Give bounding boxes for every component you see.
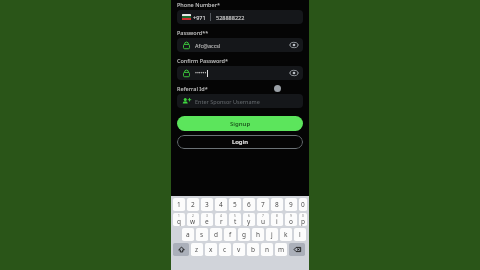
staticText: 8 bbox=[276, 214, 278, 218]
staticText: Password** bbox=[177, 29, 209, 36]
staticText: i bbox=[276, 217, 278, 226]
staticText: g bbox=[242, 230, 246, 239]
staticText: 7 bbox=[262, 214, 264, 218]
button[interactable]: s bbox=[196, 228, 208, 241]
staticText: 9 bbox=[289, 200, 293, 209]
staticText: z bbox=[195, 245, 199, 254]
staticText: 6 bbox=[247, 200, 251, 209]
button[interactable]: f bbox=[224, 228, 236, 241]
staticText: 7 bbox=[261, 200, 265, 209]
button[interactable]: z bbox=[191, 243, 203, 256]
button[interactable]: j bbox=[266, 228, 278, 241]
staticText: Login bbox=[232, 138, 248, 146]
button[interactable]: l bbox=[294, 228, 306, 241]
staticText: s bbox=[200, 230, 204, 239]
staticText: 0 bbox=[302, 214, 304, 218]
staticText: k bbox=[284, 230, 288, 239]
staticText: 5 bbox=[233, 200, 237, 209]
staticText: Referral Id* bbox=[177, 85, 208, 92]
staticText: 1 bbox=[178, 214, 180, 218]
button[interactable]: 0 bbox=[299, 198, 307, 211]
staticText: c bbox=[223, 245, 227, 254]
staticText: x bbox=[209, 245, 213, 254]
button[interactable]: +971 bbox=[177, 10, 303, 24]
button[interactable]: Enter Sponsor Username bbox=[177, 94, 303, 108]
staticText: e bbox=[205, 217, 209, 226]
staticText: l bbox=[299, 230, 301, 239]
staticText: w bbox=[190, 217, 196, 226]
button[interactable]: 2 bbox=[187, 198, 199, 211]
button[interactable]: 5 bbox=[229, 198, 241, 211]
staticText: h bbox=[256, 230, 261, 239]
staticText: 2 bbox=[192, 214, 194, 218]
button[interactable]: b bbox=[247, 243, 259, 256]
staticText: d bbox=[214, 230, 218, 239]
staticText: 528888222 bbox=[216, 14, 245, 21]
staticText: 3 bbox=[205, 200, 209, 209]
button[interactable]: 3 bbox=[201, 213, 213, 226]
button[interactable]: •••••• bbox=[177, 66, 303, 80]
staticText: 2 bbox=[191, 200, 195, 209]
staticText: 9 bbox=[290, 214, 292, 218]
button[interactable]: 8 bbox=[271, 198, 283, 211]
staticText: 6 bbox=[248, 214, 250, 218]
staticText: +971 bbox=[193, 14, 206, 21]
staticText: u bbox=[261, 217, 266, 226]
button[interactable]: g bbox=[238, 228, 250, 241]
staticText: n bbox=[265, 245, 270, 254]
staticText: 4 bbox=[219, 200, 223, 209]
button[interactable]: Show password bbox=[290, 41, 298, 49]
button[interactable]: v bbox=[233, 243, 245, 256]
staticText: 4 bbox=[220, 214, 222, 218]
button[interactable]: 3 bbox=[201, 198, 213, 211]
staticText: o bbox=[289, 217, 293, 226]
button[interactable]: 5 bbox=[229, 213, 241, 226]
staticText: 1 bbox=[177, 200, 181, 209]
staticText: 8 bbox=[275, 200, 279, 209]
staticText: Confirm Password* bbox=[177, 57, 228, 64]
button[interactable]: 9 bbox=[285, 213, 297, 226]
staticText: •••••• bbox=[195, 70, 207, 77]
button[interactable]: Show password bbox=[290, 69, 298, 77]
button[interactable]: Backspace bbox=[289, 243, 305, 256]
staticText: y bbox=[247, 217, 251, 226]
button[interactable]: Afc@accsl bbox=[177, 38, 303, 52]
button[interactable]: Signup bbox=[177, 116, 303, 131]
button[interactable]: 6 bbox=[243, 198, 255, 211]
button[interactable]: Login bbox=[177, 135, 303, 149]
button[interactable]: c bbox=[219, 243, 231, 256]
button[interactable]: 9 bbox=[285, 198, 297, 211]
staticText: p bbox=[301, 217, 305, 226]
staticText: f bbox=[229, 230, 232, 239]
button[interactable]: 8 bbox=[271, 213, 283, 226]
button[interactable]: n bbox=[261, 243, 273, 256]
button[interactable]: x bbox=[205, 243, 217, 256]
button[interactable]: m bbox=[275, 243, 287, 256]
staticText: Enter Sponsor Username bbox=[195, 98, 260, 105]
button[interactable]: 4 bbox=[215, 213, 227, 226]
button[interactable]: 0 bbox=[299, 213, 307, 226]
staticText: Phone Number* bbox=[177, 1, 221, 8]
button[interactable]: 2 bbox=[187, 213, 199, 226]
button[interactable]: h bbox=[252, 228, 264, 241]
button[interactable]: 4 bbox=[215, 198, 227, 211]
button[interactable]: Shift bbox=[173, 243, 189, 256]
button[interactable]: 6 bbox=[243, 213, 255, 226]
staticText: 5 bbox=[234, 214, 236, 218]
button[interactable]: 7 bbox=[257, 198, 269, 211]
button[interactable]: k bbox=[280, 228, 292, 241]
staticText: j bbox=[271, 230, 273, 239]
button[interactable]: d bbox=[210, 228, 222, 241]
staticText: b bbox=[251, 245, 255, 254]
button[interactable]: 1 bbox=[173, 198, 185, 211]
button[interactable]: 1 bbox=[173, 213, 185, 226]
staticText: Afc@accsl bbox=[195, 42, 221, 49]
button[interactable]: 7 bbox=[257, 213, 269, 226]
staticText: a bbox=[186, 230, 190, 239]
staticText: r bbox=[220, 217, 223, 226]
button[interactable]: a bbox=[182, 228, 194, 241]
staticText: 0 bbox=[301, 200, 305, 209]
staticText: q bbox=[177, 217, 181, 226]
staticText: t bbox=[234, 217, 237, 226]
staticText: v bbox=[237, 245, 241, 254]
